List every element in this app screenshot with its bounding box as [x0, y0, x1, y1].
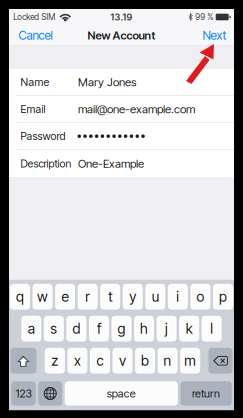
- button[interactable]: l: [202, 316, 222, 342]
- button[interactable]: s: [44, 316, 64, 342]
- button[interactable]: r: [78, 284, 98, 310]
- staticText: mail@one-example.com: [78, 102, 195, 116]
- staticText: e: [62, 288, 69, 305]
- staticText: x: [74, 352, 81, 369]
- button[interactable]: Email: [9, 96, 234, 123]
- staticText: k: [186, 320, 193, 337]
- button[interactable]: f: [89, 316, 109, 342]
- button[interactable]: n: [158, 348, 178, 374]
- staticText: h: [140, 320, 148, 337]
- staticText: c: [96, 352, 103, 369]
- staticText: s: [50, 320, 57, 337]
- staticText: One-Example: [78, 157, 144, 170]
- staticText: v: [119, 352, 126, 369]
- staticText: f: [97, 320, 101, 337]
- staticText: b: [141, 352, 149, 369]
- staticText: Mary Jones: [78, 75, 136, 89]
- staticText: m: [184, 352, 196, 369]
- button[interactable]: b: [135, 348, 155, 374]
- staticText: return: [192, 387, 220, 400]
- staticText: 123: [15, 387, 31, 400]
- staticText: n: [164, 352, 172, 369]
- staticText: w: [37, 288, 48, 305]
- staticText: Cancel: [18, 28, 52, 43]
- button[interactable]: return: [180, 381, 232, 406]
- button[interactable]: a: [21, 316, 41, 342]
- staticText: p: [219, 288, 227, 305]
- staticText: y: [129, 288, 136, 305]
- button[interactable]: j: [157, 316, 177, 342]
- button[interactable]: w: [32, 284, 52, 310]
- button[interactable]: Name: [9, 69, 234, 96]
- staticText: Locked SIM: [13, 12, 55, 22]
- staticText: 13.19: [110, 11, 132, 23]
- staticText: t: [108, 288, 112, 305]
- staticText: space: [107, 387, 136, 400]
- staticText: o: [196, 288, 204, 305]
- button[interactable]: v: [112, 348, 132, 374]
- button[interactable]: Delete: [208, 348, 232, 374]
- staticText: u: [152, 288, 159, 305]
- button[interactable]: c: [90, 348, 110, 374]
- button[interactable]: o: [190, 284, 210, 310]
- button[interactable]: z: [45, 348, 65, 374]
- button[interactable]: t: [100, 284, 120, 310]
- staticText: Email: [20, 103, 45, 116]
- button[interactable]: Description: [9, 150, 234, 177]
- staticText: New Account: [87, 29, 155, 42]
- staticText: i: [176, 288, 179, 305]
- button[interactable]: Next: [198, 23, 230, 48]
- staticText: j: [165, 320, 168, 337]
- button[interactable]: g: [111, 316, 131, 342]
- button[interactable]: q: [10, 284, 30, 310]
- button[interactable]: space: [65, 381, 178, 406]
- button[interactable]: k: [179, 316, 199, 342]
- button[interactable]: d: [66, 316, 86, 342]
- staticText: Password: [20, 130, 65, 143]
- staticText: Name: [20, 76, 49, 89]
- button[interactable]: x: [67, 348, 87, 374]
- button[interactable]: e: [55, 284, 75, 310]
- staticText: r: [85, 288, 90, 305]
- staticText: d: [72, 320, 80, 337]
- staticText: 99 %: [195, 12, 213, 22]
- staticText: g: [117, 320, 125, 337]
- staticText: Next: [202, 28, 226, 43]
- button[interactable]: p: [213, 284, 233, 310]
- button[interactable]: i: [168, 284, 188, 310]
- button[interactable]: m: [180, 348, 200, 374]
- button[interactable]: y: [123, 284, 143, 310]
- button[interactable]: Next keyboard: [38, 381, 62, 406]
- button[interactable]: 123: [11, 381, 36, 406]
- button[interactable]: Shift: [10, 348, 36, 374]
- staticText: a: [28, 320, 35, 337]
- button[interactable]: u: [145, 284, 165, 310]
- staticText: l: [210, 320, 213, 337]
- button[interactable]: Cancel: [14, 23, 56, 48]
- button[interactable]: h: [134, 316, 154, 342]
- staticText: Description: [20, 157, 71, 170]
- staticText: z: [51, 352, 58, 369]
- staticText: q: [16, 288, 24, 305]
- button[interactable]: Password: [9, 123, 234, 150]
